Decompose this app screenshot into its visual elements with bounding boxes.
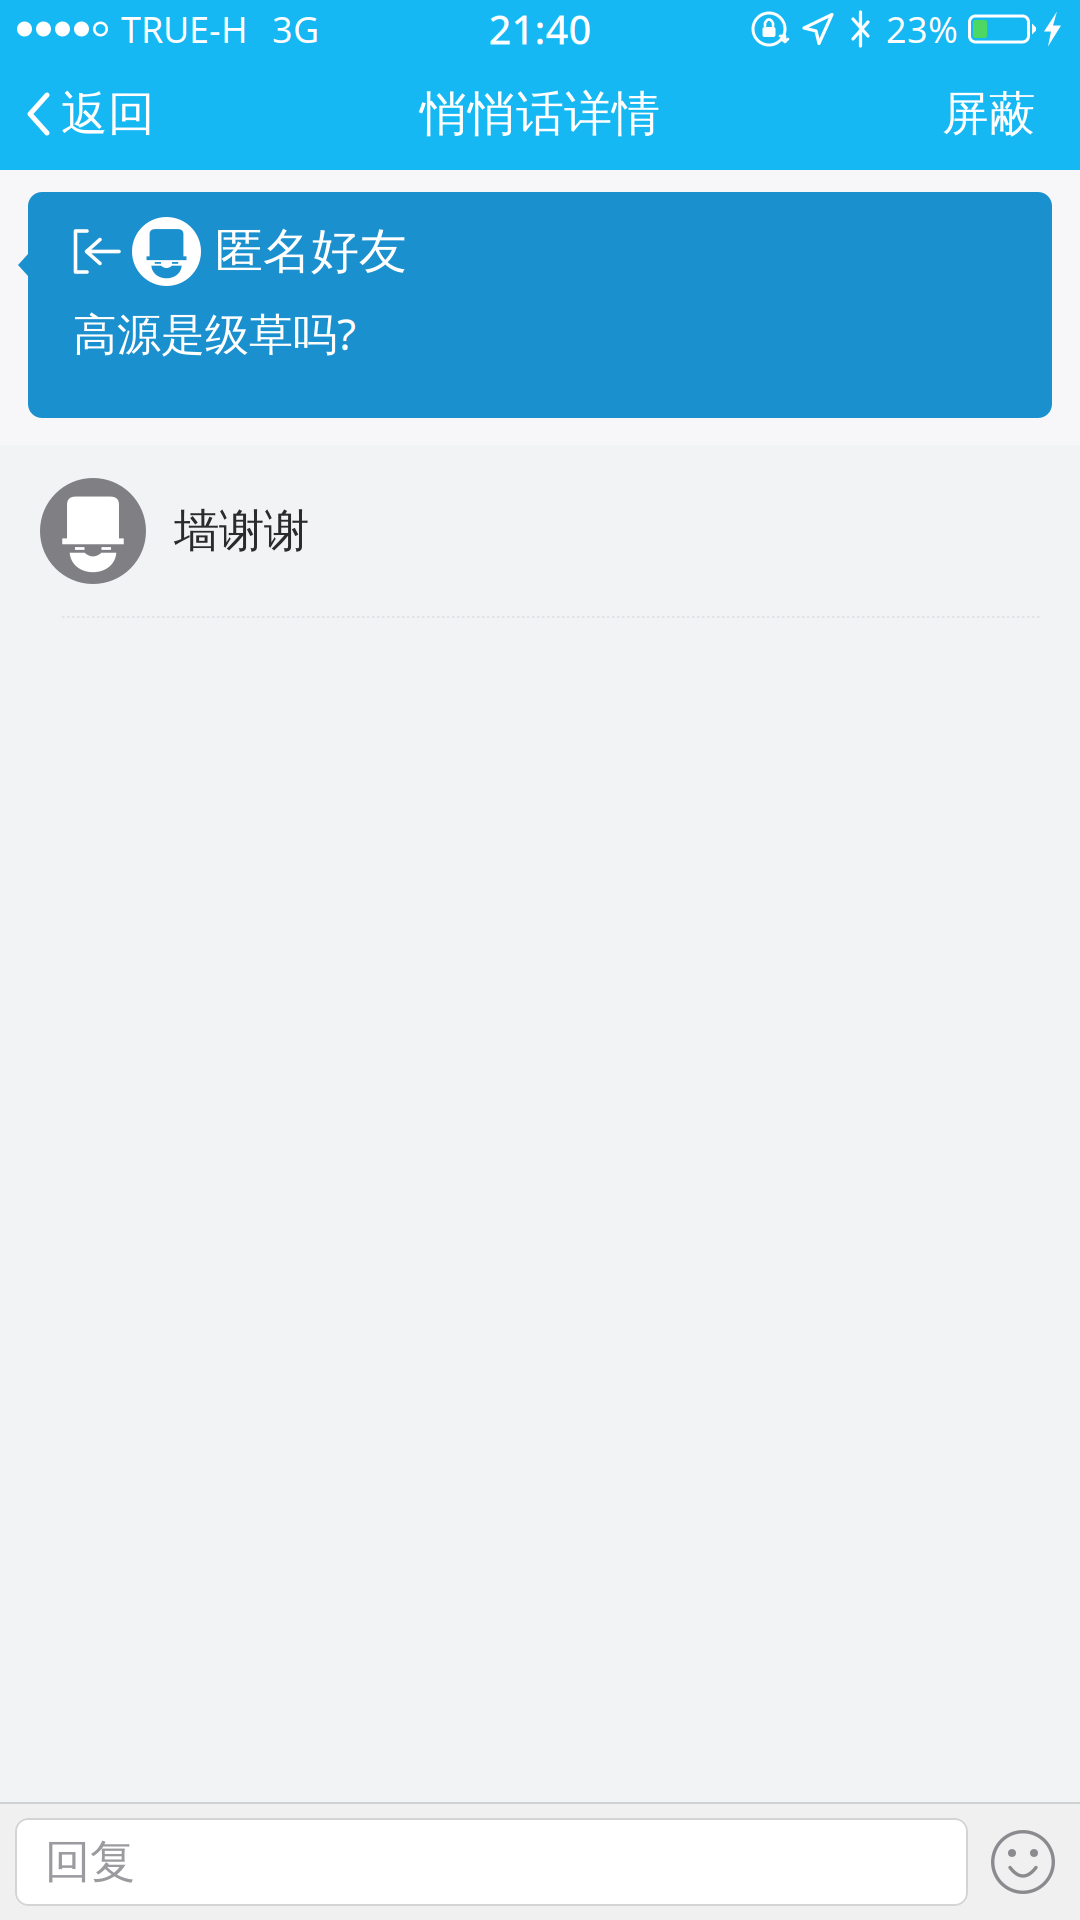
button[interactable]: Emoji keyboard (980, 1819, 1066, 1905)
button[interactable]: 屏蔽 (916, 58, 1080, 170)
staticText: 悄悄话详情 (420, 84, 660, 143)
staticText: 高源是级草吗? (73, 304, 356, 362)
staticText: 3G (272, 5, 319, 53)
button[interactable]: 返回 (0, 58, 173, 170)
button[interactable]: 墙谢谢 (0, 462, 1080, 600)
staticText: 屏蔽 (942, 85, 1036, 143)
staticText: 匿名好友 (215, 222, 407, 281)
button[interactable]: 匿名好友 (0, 192, 1080, 418)
staticText: 21:40 (488, 2, 591, 55)
staticText: 回复 (45, 1834, 135, 1890)
staticText: 23% (886, 5, 958, 53)
staticText: TRUE-H (121, 5, 248, 53)
staticText: 墙谢谢 (174, 503, 309, 559)
staticText: 返回 (61, 85, 155, 143)
button[interactable]: 回复 (15, 1818, 968, 1906)
